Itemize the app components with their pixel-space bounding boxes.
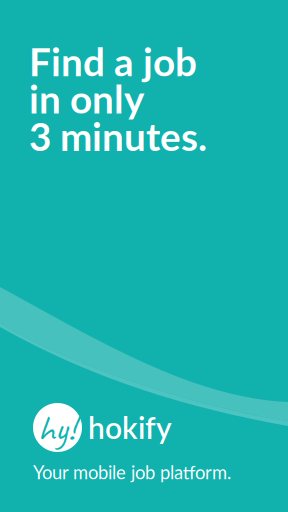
staticText: Find a job — [29, 38, 197, 84]
staticText: hokify — [88, 409, 172, 445]
staticText: Your mobile job platform. — [33, 461, 231, 483]
staticText: in only — [29, 75, 144, 122]
button[interactable]: hokify — [33, 403, 172, 452]
staticText: 3 minutes. — [29, 113, 207, 159]
staticText: hy! — [37, 405, 75, 452]
